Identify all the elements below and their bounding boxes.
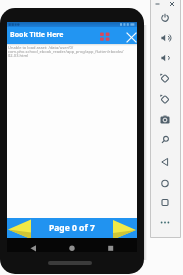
button[interactable]: Book Title Here [10,30,64,40]
button[interactable]: Page 0 of 7 [49,222,95,234]
button[interactable] [62,240,82,252]
button[interactable] [150,0,181,238]
button[interactable] [23,240,43,252]
button[interactable] [109,218,137,238]
button[interactable] [98,30,112,44]
button[interactable] [7,218,35,238]
button[interactable] [124,30,138,44]
button[interactable] [101,240,121,252]
staticText: Unable to load asset: /data/user/0/ com.… [8,45,124,59]
